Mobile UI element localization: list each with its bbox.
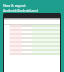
staticText: Android/Android.xml — [3, 8, 38, 13]
staticText: New & export — [3, 3, 26, 8]
